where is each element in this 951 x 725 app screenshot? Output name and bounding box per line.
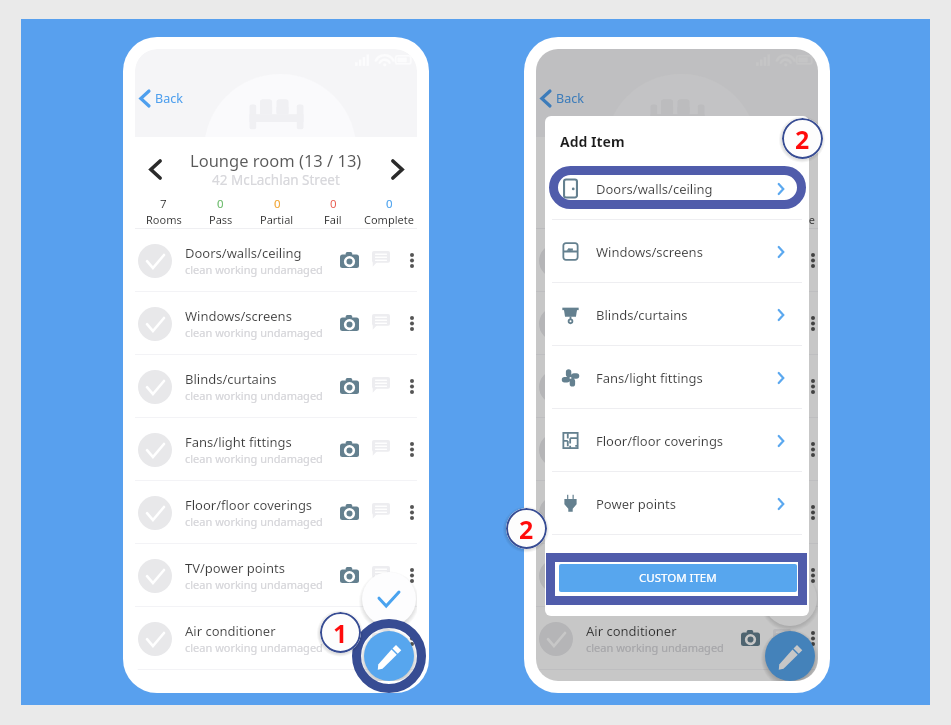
button[interactable]: More options bbox=[801, 249, 818, 272]
button[interactable]: Take photo bbox=[737, 625, 763, 651]
button[interactable]: Back bbox=[536, 84, 589, 113]
button[interactable]: Previous room bbox=[139, 153, 171, 185]
staticText: Doors/walls/ceiling bbox=[185, 244, 302, 262]
button[interactable]: Add note bbox=[769, 561, 795, 587]
button[interactable]: TV/power points bbox=[536, 544, 818, 607]
staticText: Blinds/curtains bbox=[586, 370, 678, 388]
staticText: Windows/screens bbox=[596, 243, 778, 261]
button[interactable]: More options bbox=[801, 501, 818, 524]
button[interactable]: Add note bbox=[769, 498, 795, 524]
button[interactable]: More options bbox=[801, 375, 818, 398]
button[interactable]: More options bbox=[801, 564, 818, 587]
button[interactable]: Windows/screens bbox=[536, 292, 818, 355]
button[interactable]: More options bbox=[400, 312, 417, 335]
button[interactable]: Fans/light fittings bbox=[536, 418, 818, 481]
button[interactable]: Power points bbox=[545, 472, 809, 535]
button[interactable]: Blinds/curtains bbox=[135, 355, 417, 418]
button[interactable]: Windows/screens bbox=[135, 292, 417, 355]
button[interactable]: Add note bbox=[769, 309, 795, 335]
button[interactable]: Fans/light fittings bbox=[135, 418, 417, 481]
button[interactable]: Add note bbox=[769, 246, 795, 272]
button[interactable]: Doors/walls/ceiling bbox=[135, 229, 417, 292]
staticText: Complete bbox=[364, 212, 414, 227]
staticText: Floor/floor coverings bbox=[185, 496, 313, 514]
button[interactable]: Floor/floor coverings bbox=[536, 481, 818, 544]
button[interactable]: Air conditioner bbox=[135, 607, 417, 670]
button[interactable]: Mark complete bbox=[763, 572, 817, 626]
staticText: 2 bbox=[519, 512, 534, 546]
button[interactable]: Add note bbox=[769, 624, 795, 650]
button[interactable]: Add note bbox=[368, 561, 394, 587]
button[interactable]: More options bbox=[400, 501, 417, 524]
button[interactable]: 0 bbox=[706, 196, 762, 227]
staticText: clean working undamaged bbox=[586, 640, 724, 655]
button[interactable]: 0 bbox=[650, 196, 706, 227]
button[interactable]: More options bbox=[801, 438, 818, 461]
button[interactable]: Take photo bbox=[336, 247, 362, 273]
staticText: clean working undamaged bbox=[185, 325, 323, 340]
button[interactable]: Add note bbox=[769, 372, 795, 398]
button[interactable]: More options bbox=[400, 627, 417, 650]
button[interactable]: TV/power points bbox=[135, 544, 417, 607]
button[interactable]: Mark complete bbox=[362, 572, 416, 626]
button[interactable]: Back bbox=[135, 84, 188, 113]
button[interactable]: More options bbox=[400, 375, 417, 398]
button[interactable]: Add note bbox=[769, 435, 795, 461]
staticText: Blinds/curtains bbox=[596, 306, 778, 324]
button[interactable]: Take photo bbox=[336, 436, 362, 462]
button[interactable]: More options bbox=[400, 438, 417, 461]
button[interactable]: 0 bbox=[361, 196, 417, 227]
button[interactable]: Take photo bbox=[336, 562, 362, 588]
button[interactable]: Doors/walls/ceiling bbox=[545, 157, 809, 220]
button[interactable]: 0 bbox=[762, 196, 818, 227]
button[interactable]: Windows/screens bbox=[545, 220, 809, 283]
button[interactable]: More options bbox=[400, 564, 417, 587]
button[interactable]: Air conditioner bbox=[536, 607, 818, 670]
button[interactable]: Fans/light fittings bbox=[545, 346, 809, 409]
button[interactable]: More options bbox=[801, 627, 818, 650]
button[interactable]: Take photo bbox=[336, 625, 362, 651]
button[interactable]: Blinds/curtains bbox=[545, 283, 809, 346]
button[interactable]: Next room bbox=[381, 153, 413, 185]
button[interactable]: 0 bbox=[305, 196, 361, 227]
button[interactable]: Blinds/curtains bbox=[536, 355, 818, 418]
button[interactable]: 0 bbox=[192, 196, 249, 227]
button[interactable]: Add note bbox=[368, 498, 394, 524]
button[interactable]: 0 bbox=[593, 196, 650, 227]
button[interactable]: Take photo bbox=[737, 562, 763, 588]
button[interactable]: Edit bbox=[765, 631, 815, 681]
button[interactable]: Floor/floor coverings bbox=[545, 409, 809, 472]
staticText: Air conditioner bbox=[586, 622, 677, 640]
staticText: Doors/walls/ceiling bbox=[586, 244, 703, 262]
button[interactable]: Take photo bbox=[336, 373, 362, 399]
button[interactable]: Take photo bbox=[336, 499, 362, 525]
staticText: CUSTOM ITEM bbox=[639, 570, 717, 586]
button[interactable]: More options bbox=[400, 249, 417, 272]
button[interactable]: 7 bbox=[135, 196, 192, 227]
button[interactable]: 0 bbox=[249, 196, 305, 227]
button[interactable]: Add note bbox=[368, 309, 394, 335]
button[interactable]: Add note bbox=[368, 372, 394, 398]
button[interactable]: Take photo bbox=[336, 310, 362, 336]
button[interactable]: Doors/walls/ceiling bbox=[536, 229, 818, 292]
button[interactable]: Previous room bbox=[540, 153, 572, 185]
button[interactable]: Floor/floor coverings bbox=[135, 481, 417, 544]
button[interactable]: Next room bbox=[782, 153, 814, 185]
staticText: 0 bbox=[618, 196, 625, 212]
button[interactable]: Add note bbox=[368, 246, 394, 272]
staticText: 7 bbox=[561, 196, 568, 212]
button[interactable]: Add note bbox=[368, 624, 394, 650]
button[interactable]: Edit bbox=[364, 631, 414, 681]
staticText: Rooms bbox=[146, 212, 182, 227]
button[interactable]: Add note bbox=[368, 435, 394, 461]
button[interactable]: More options bbox=[801, 312, 818, 335]
button[interactable]: 7 bbox=[536, 196, 593, 227]
button[interactable]: CUSTOM ITEM bbox=[559, 564, 797, 592]
